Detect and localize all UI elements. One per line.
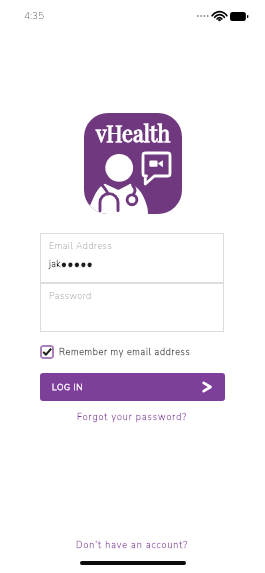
button[interactable]: Don’t have an account? (72, 535, 193, 555)
staticText: 4:35 (24, 9, 45, 23)
button[interactable]: Email Address (40, 233, 224, 283)
other: Log in (201, 381, 213, 393)
staticText: ••••• (61, 257, 94, 272)
other: Wi-Fi (213, 11, 226, 21)
button[interactable]: LOG IN (40, 373, 225, 401)
staticText: Password (49, 290, 92, 302)
staticText: Email Address (49, 240, 113, 252)
button[interactable]: Password (40, 283, 224, 332)
staticText: LOG IN (52, 381, 84, 393)
staticText: vHealth (96, 119, 171, 148)
staticText: Remember my email address (59, 346, 191, 358)
button[interactable]: Forgot your password? (73, 407, 192, 427)
other: Battery (230, 12, 248, 21)
button[interactable]: Remember my email address (40, 344, 191, 360)
staticText: jak (49, 258, 61, 270)
